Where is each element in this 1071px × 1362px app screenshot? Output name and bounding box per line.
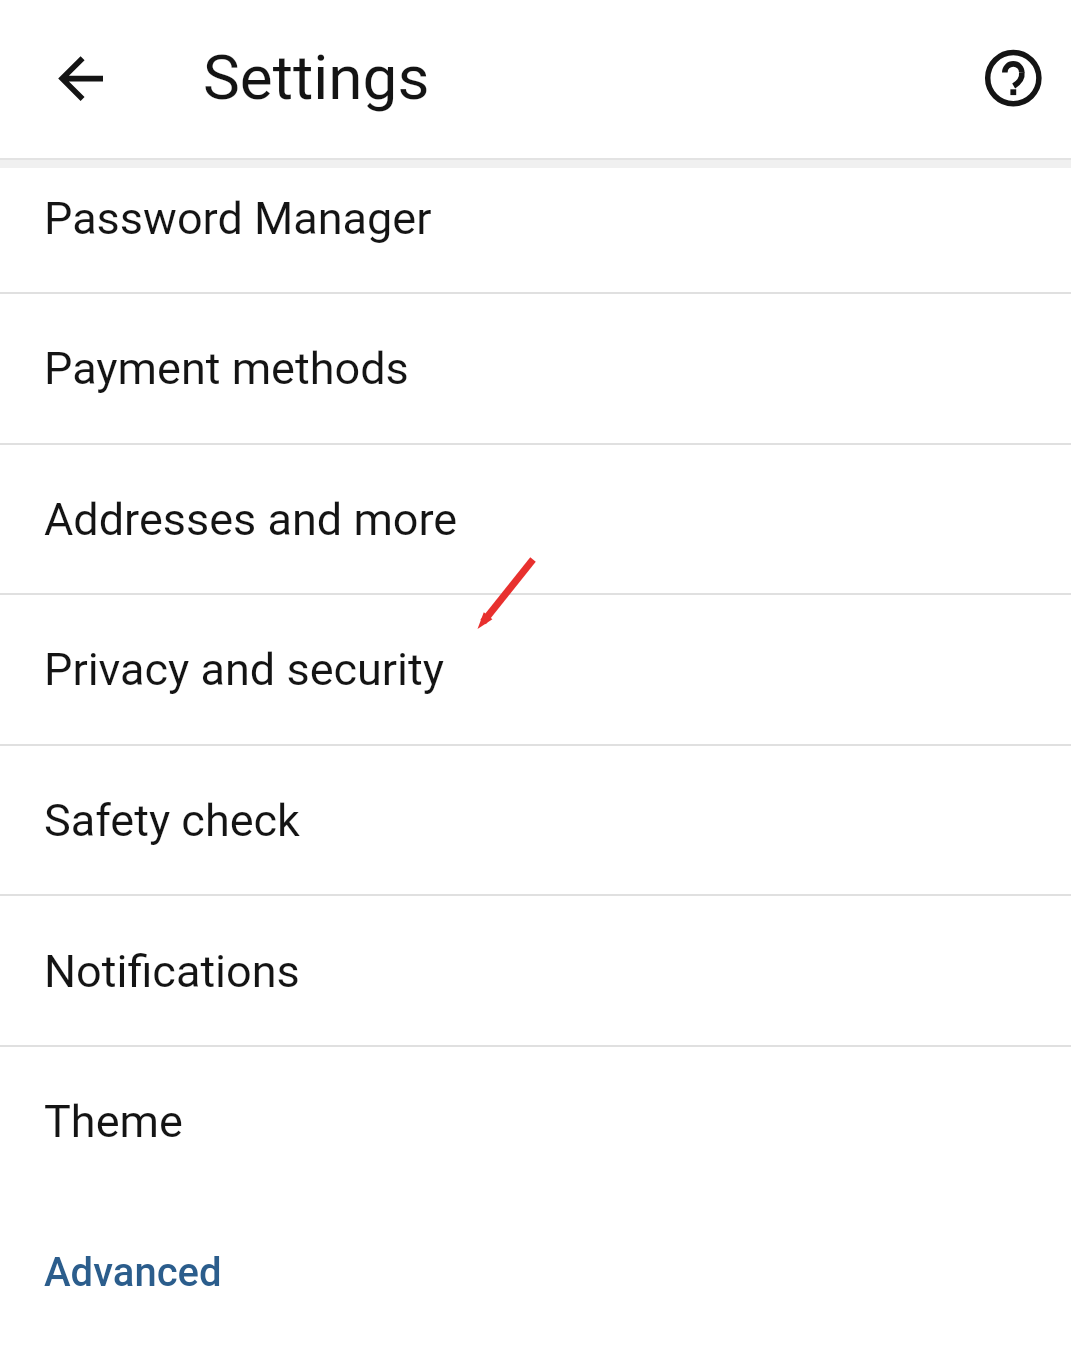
button[interactable]: Theme (0, 1046, 1071, 1197)
button[interactable]: Payment methods (0, 293, 1071, 444)
staticText: Advanced (44, 1249, 222, 1296)
staticText: Theme (44, 1095, 183, 1148)
staticText: Addresses and more (44, 493, 458, 546)
button[interactable]: Notifications (0, 896, 1071, 1047)
button[interactable]: Advanced (0, 1197, 1071, 1348)
button[interactable]: Privacy and security (0, 594, 1071, 745)
button[interactable]: Back (47, 45, 114, 112)
staticText: Safety check (44, 794, 300, 847)
staticText: Privacy and security (44, 643, 445, 696)
button[interactable]: Addresses and more (0, 444, 1071, 595)
button[interactable]: Help (979, 44, 1047, 112)
button[interactable]: Password Manager (0, 143, 1071, 294)
staticText: Payment methods (44, 342, 409, 395)
staticText: Notifications (44, 945, 300, 998)
staticText: Password Manager (44, 192, 432, 245)
staticText: Settings (203, 41, 430, 114)
button[interactable]: Safety check (0, 745, 1071, 896)
